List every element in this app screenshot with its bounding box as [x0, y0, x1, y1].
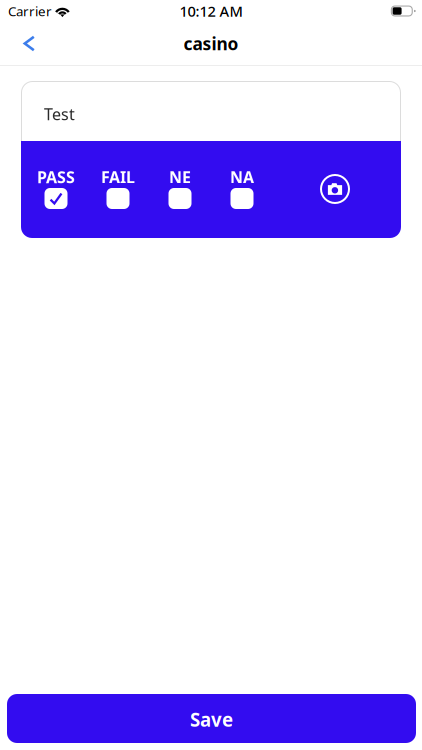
staticText: NA — [230, 166, 254, 188]
staticText: Carrier — [8, 2, 52, 20]
staticText: Save — [190, 707, 233, 732]
button[interactable]: FAIL — [87, 169, 149, 209]
button[interactable]: NA — [211, 169, 273, 209]
button[interactable]: Back — [0, 26, 49, 60]
button[interactable]: Take photo — [320, 174, 350, 204]
button[interactable]: NE — [149, 169, 211, 209]
staticText: Test — [44, 103, 75, 125]
staticText: 10:12 AM — [179, 1, 242, 21]
staticText: casino — [183, 32, 238, 55]
staticText: PASS — [37, 166, 75, 188]
staticText: FAIL — [101, 166, 135, 188]
button[interactable]: PASS — [25, 169, 87, 209]
staticText: NE — [169, 166, 191, 188]
button[interactable]: Save — [7, 694, 416, 743]
